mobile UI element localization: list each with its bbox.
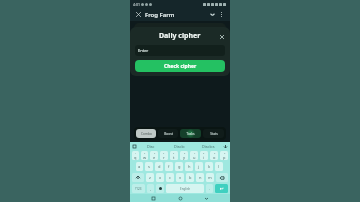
staticText: , — [150, 186, 152, 191]
staticText: 3 — [154, 152, 156, 155]
button[interactable]: Space — [166, 184, 204, 193]
button[interactable]: Disc — [137, 142, 165, 150]
staticText: m — [208, 175, 212, 180]
staticText: 0 — [224, 152, 226, 155]
staticText: k — [208, 164, 211, 169]
button[interactable]: Symbols — [132, 184, 145, 193]
button[interactable]: Disclo — [165, 142, 194, 150]
button[interactable]: 1 — [132, 151, 139, 160]
button[interactable]: l — [215, 162, 223, 171]
button[interactable]: g — [175, 162, 183, 171]
staticText: u — [193, 155, 196, 160]
button[interactable]: a — [136, 162, 143, 171]
button[interactable]: j — [195, 162, 203, 171]
staticText: y — [183, 155, 186, 160]
staticText: Boost — [164, 132, 173, 136]
staticText: 8 — [203, 152, 205, 155]
button[interactable]: Dismiss — [218, 33, 225, 40]
staticText: s — [148, 164, 150, 169]
button[interactable]: 6 — [180, 151, 188, 160]
staticText: a — [138, 164, 141, 169]
button[interactable]: Emoji — [156, 184, 164, 193]
staticText: 4 — [163, 152, 165, 155]
button[interactable]: 4 — [160, 151, 168, 160]
button[interactable]: h — [185, 162, 193, 171]
staticText: ?123 — [135, 187, 142, 191]
staticText: 9 — [214, 152, 216, 155]
button[interactable]: s — [145, 162, 153, 171]
staticText: 7 — [194, 152, 196, 155]
button[interactable]: Enter — [215, 184, 228, 193]
staticText: h — [188, 164, 191, 169]
staticText: 2 — [144, 152, 146, 155]
button[interactable]: 2 — [141, 151, 148, 160]
staticText: Disc — [147, 144, 155, 149]
staticText: r — [163, 155, 165, 160]
button[interactable]: 9 — [210, 151, 218, 160]
staticText: p — [223, 155, 226, 160]
staticText: v — [179, 175, 182, 180]
staticText: Stats — [210, 132, 218, 136]
staticText: Disclo — [174, 144, 185, 149]
button[interactable]: Backspace — [216, 173, 228, 182]
button[interactable]: Close — [134, 10, 143, 19]
staticText: Tasks — [186, 132, 195, 136]
button[interactable]: d — [155, 162, 163, 171]
staticText: Combo — [141, 132, 152, 136]
staticText: d — [158, 164, 161, 169]
button[interactable]: Keyboard settings — [132, 144, 137, 149]
staticText: 1 — [135, 152, 137, 155]
staticText: My Infipunk — [138, 26, 161, 31]
staticText: b — [189, 175, 192, 180]
staticText: Enter — [138, 48, 149, 53]
staticText: f — [168, 164, 170, 169]
button[interactable]: Boost — [158, 129, 178, 138]
staticText: l — [218, 164, 220, 169]
staticText: i — [203, 155, 205, 160]
button[interactable]: Period — [206, 184, 213, 193]
button[interactable]: k — [205, 162, 213, 171]
staticText: x — [159, 175, 162, 180]
staticText: Disclos — [202, 144, 215, 149]
button[interactable]: Combo — [136, 129, 156, 138]
button[interactable]: x — [156, 173, 164, 182]
button[interactable]: Shift — [132, 173, 144, 182]
button[interactable]: Tasks — [180, 129, 201, 138]
button[interactable]: Back — [203, 195, 210, 202]
button[interactable]: Enter — [135, 45, 225, 56]
button[interactable]: c — [166, 173, 174, 182]
staticText: Daily cipher — [159, 31, 201, 41]
button[interactable]: Home — [177, 195, 184, 202]
button[interactable]: n — [196, 173, 204, 182]
button[interactable]: Expand — [208, 10, 217, 19]
staticText: g — [178, 164, 181, 169]
staticText: . — [209, 186, 211, 191]
staticText: q — [134, 155, 137, 160]
staticText: w — [143, 155, 147, 160]
button[interactable]: 0 — [220, 151, 228, 160]
button[interactable]: Disclos — [194, 142, 223, 150]
button[interactable]: f — [165, 162, 173, 171]
button[interactable]: More options — [217, 10, 226, 19]
staticText: Check cipher — [164, 63, 197, 70]
button[interactable]: Stats — [203, 129, 224, 138]
button[interactable]: Recents — [150, 195, 157, 202]
button[interactable]: My Infipunk — [134, 23, 226, 49]
button[interactable]: 5 — [170, 151, 178, 160]
staticText: English — [180, 187, 191, 191]
button[interactable]: Expand suggestions — [223, 144, 228, 149]
button[interactable]: Check cipher — [135, 60, 225, 72]
button[interactable]: 7 — [190, 151, 198, 160]
staticText: j — [198, 164, 200, 169]
staticText: 4:01 — [133, 2, 140, 7]
button[interactable]: 8 — [200, 151, 208, 160]
button[interactable]: m — [206, 173, 214, 182]
button[interactable]: z — [146, 173, 154, 182]
button[interactable]: 3 — [150, 151, 158, 160]
button[interactable]: v — [176, 173, 184, 182]
button[interactable]: Comma — [147, 184, 154, 193]
button[interactable]: b — [186, 173, 194, 182]
staticText: Frog Farm — [145, 11, 175, 19]
